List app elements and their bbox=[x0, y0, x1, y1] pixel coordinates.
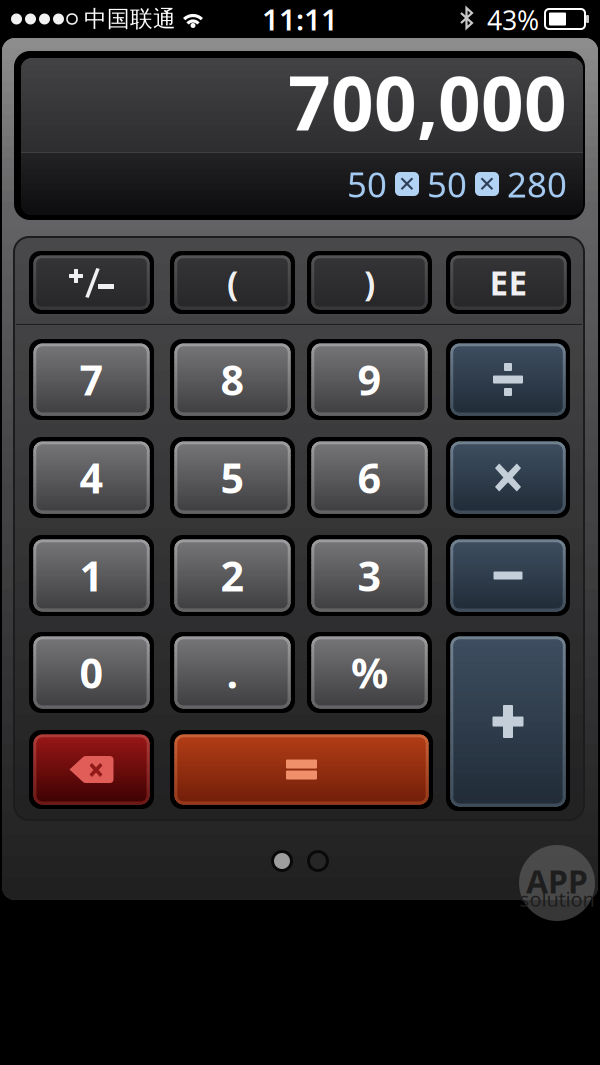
button[interactable] bbox=[29, 730, 154, 809]
staticText: APP bbox=[526, 860, 588, 902]
button[interactable] bbox=[29, 251, 154, 314]
staticText: 6 bbox=[357, 450, 381, 505]
staticText: 280 bbox=[507, 161, 567, 207]
staticText: 2 bbox=[220, 548, 244, 603]
staticText: ✕ bbox=[478, 172, 496, 196]
button[interactable]: 4 bbox=[29, 437, 154, 518]
button[interactable]: ) bbox=[307, 251, 432, 314]
button[interactable] bbox=[170, 730, 433, 809]
staticText: 4 bbox=[79, 450, 103, 505]
staticText: 9 bbox=[357, 352, 381, 407]
staticText: 50 bbox=[427, 161, 467, 207]
button[interactable]: 7 bbox=[29, 339, 154, 420]
staticText: 1 bbox=[79, 548, 103, 603]
staticText: . bbox=[226, 645, 238, 700]
staticText: % bbox=[351, 645, 388, 700]
staticText: 8 bbox=[220, 352, 244, 407]
staticText: 3 bbox=[357, 548, 381, 603]
staticText: 0 bbox=[79, 645, 103, 700]
staticText: 50 bbox=[347, 161, 387, 207]
staticText: 7 bbox=[79, 352, 103, 407]
staticText: ) bbox=[364, 260, 375, 305]
staticText: 700,000 bbox=[288, 52, 567, 151]
button[interactable]: . bbox=[170, 632, 295, 713]
button[interactable]: 1 bbox=[29, 535, 154, 616]
staticText: ✕ bbox=[398, 172, 416, 196]
button[interactable]: 6 bbox=[307, 437, 432, 518]
staticText: ( bbox=[227, 260, 238, 305]
button[interactable]: ( bbox=[170, 251, 295, 314]
button[interactable]: 0 bbox=[29, 632, 154, 713]
button[interactable]: 8 bbox=[170, 339, 295, 420]
button[interactable] bbox=[446, 437, 570, 518]
button[interactable] bbox=[446, 632, 570, 811]
staticText: EE bbox=[489, 260, 527, 305]
staticText: solution bbox=[519, 886, 594, 912]
button[interactable]: 2 bbox=[170, 535, 295, 616]
button[interactable] bbox=[446, 535, 570, 616]
staticText: 11:11 bbox=[262, 0, 338, 38]
button[interactable]: 5 bbox=[170, 437, 295, 518]
staticText: 5 bbox=[220, 450, 244, 505]
button[interactable]: 3 bbox=[307, 535, 432, 616]
staticText: 中国联通 bbox=[84, 5, 176, 33]
button[interactable] bbox=[446, 339, 570, 420]
button[interactable]: % bbox=[307, 632, 432, 713]
button[interactable]: 9 bbox=[307, 339, 432, 420]
staticText: 43% bbox=[487, 2, 539, 38]
button[interactable]: EE bbox=[446, 251, 571, 314]
